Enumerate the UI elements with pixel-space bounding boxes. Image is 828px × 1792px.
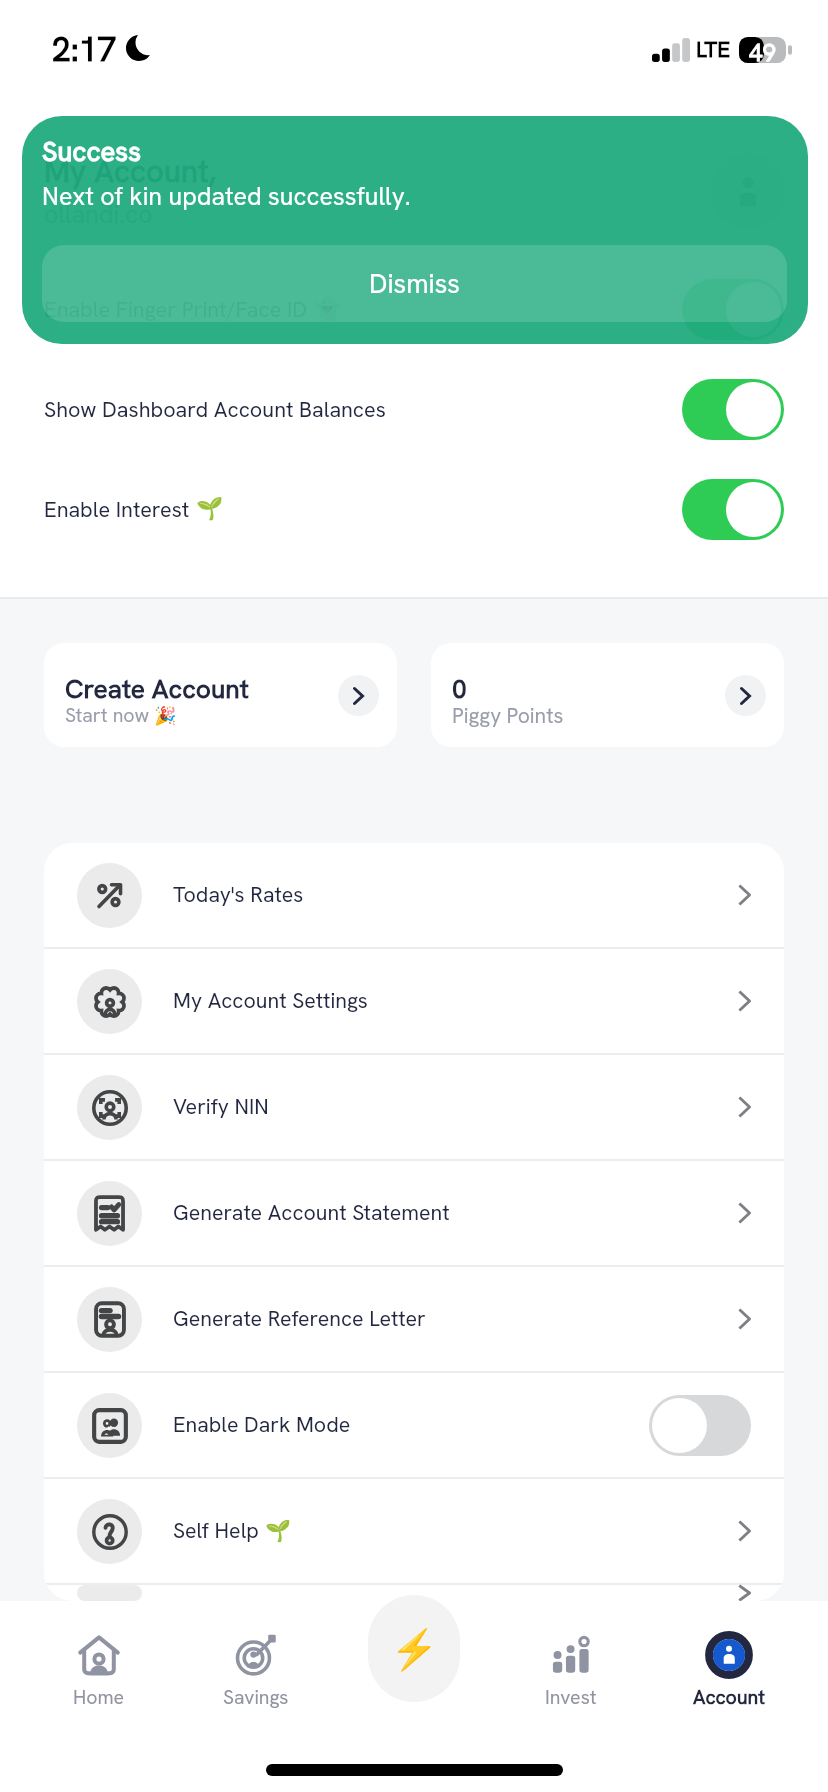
button[interactable]: Enable Finger Print/Face ID xyxy=(0,259,828,359)
button[interactable]: Enable Dark Mode xyxy=(44,1373,784,1477)
staticText: Verify NIN xyxy=(173,1093,269,1121)
staticText: 2:17 xyxy=(52,27,117,71)
staticText: Self Help xyxy=(173,1517,259,1545)
button[interactable]: Self Help xyxy=(44,1479,784,1583)
button[interactable]: Generate Account Statement xyxy=(44,1161,784,1265)
staticText: Today's Rates xyxy=(173,881,304,909)
staticText: Start now xyxy=(65,702,150,728)
staticText: LTE xyxy=(696,35,731,64)
button[interactable]: 0 xyxy=(431,643,784,747)
staticText: Generate Account Statement xyxy=(173,1199,450,1227)
button[interactable] xyxy=(44,1585,784,1601)
staticText: Enable Dark Mode xyxy=(173,1411,351,1439)
staticText: ollandi.co xyxy=(44,198,153,231)
staticText: Generate Reference Letter xyxy=(173,1305,426,1333)
button[interactable]: Home xyxy=(20,1601,177,1709)
button[interactable]: Invest xyxy=(492,1601,650,1709)
button[interactable]: Enable Interest xyxy=(0,459,828,559)
staticText: Show Dashboard Account Balances xyxy=(44,395,386,423)
staticText: ⚡ xyxy=(390,1627,439,1673)
staticText: 49 xyxy=(749,37,776,63)
staticText: Next of kin updated successfully. xyxy=(42,180,411,213)
staticText: Create Account xyxy=(65,672,249,706)
button[interactable]: Quick actions xyxy=(368,1595,460,1702)
button[interactable]: Today's Rates xyxy=(44,843,784,947)
button[interactable]: Create Account xyxy=(44,643,397,747)
staticText: Savings xyxy=(223,1684,289,1709)
staticText: Account xyxy=(693,1684,765,1709)
staticText: Dismiss xyxy=(369,266,461,301)
staticText: My Account Settings xyxy=(173,987,368,1015)
staticText: 0 xyxy=(452,672,467,706)
button[interactable]: Show Dashboard Account Balances xyxy=(0,359,828,459)
button[interactable]: Dismiss xyxy=(42,245,787,322)
button[interactable]: Verify NIN xyxy=(44,1055,784,1159)
staticText: 🎉 xyxy=(154,705,177,726)
button[interactable]: Toggle on xyxy=(682,479,784,540)
staticText: Success xyxy=(42,134,142,170)
staticText: My Account, xyxy=(44,151,217,191)
staticText: Enable Finger Print/Face ID xyxy=(44,295,308,323)
button[interactable]: Generate Reference Letter xyxy=(44,1267,784,1371)
button[interactable]: Savings xyxy=(177,1601,334,1709)
button[interactable]: Toggle on xyxy=(682,279,784,340)
staticText: 🌱 xyxy=(196,496,224,522)
staticText: Enable Interest xyxy=(44,495,190,523)
staticText: Piggy Points xyxy=(452,702,564,729)
button[interactable]: Account xyxy=(650,1601,808,1709)
staticText: 🌱 xyxy=(265,1519,292,1544)
staticText: Invest xyxy=(545,1684,597,1709)
button[interactable]: Toggle on xyxy=(682,379,784,440)
staticText: Home xyxy=(73,1684,125,1709)
button[interactable]: Toggle off xyxy=(649,1395,751,1456)
button[interactable]: My Account Settings xyxy=(44,949,784,1053)
